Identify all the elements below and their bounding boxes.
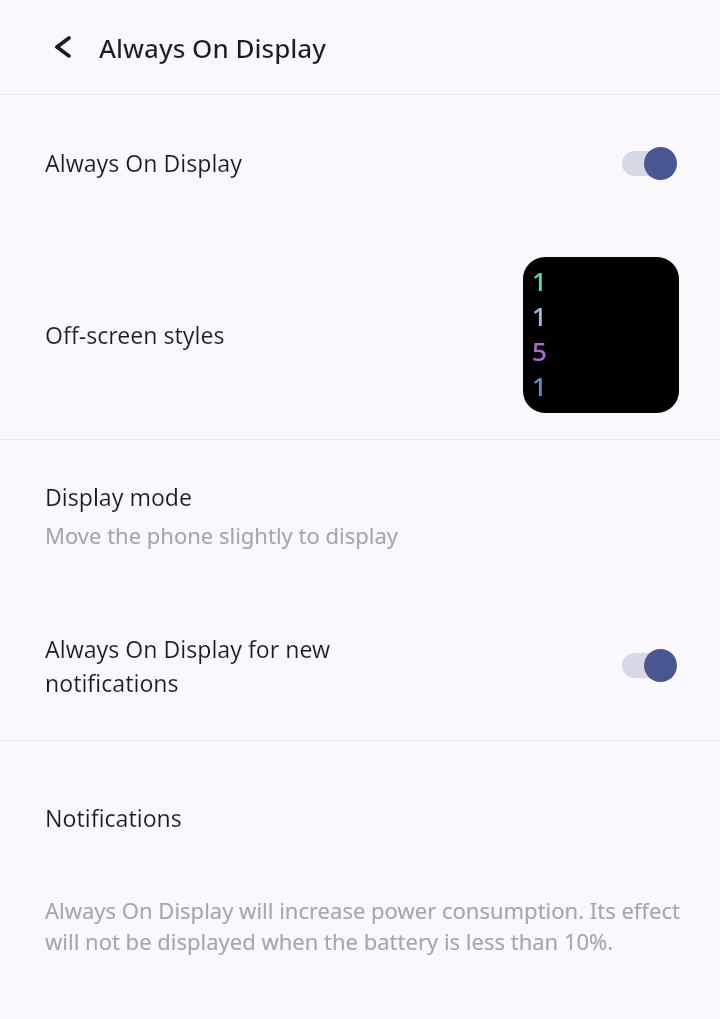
staticText: Always On Display will increase power co… [45,895,690,957]
button[interactable]: Off-screen style preview [523,257,679,413]
button[interactable]: Toggle [620,645,678,685]
staticText: 1 [532,298,547,333]
staticText: Always On Display [99,30,326,65]
staticText: 1 [532,368,547,403]
staticText: 5 [532,333,547,368]
staticText: Always On Display for new notifications [45,633,331,698]
staticText: Display mode [45,481,192,512]
staticText: Notifications [45,802,678,833]
button[interactable]: Display mode [0,440,720,590]
button[interactable]: Always On Display for new notifications [0,590,720,740]
button[interactable]: Off-screen styles [0,230,720,439]
staticText: Off-screen styles [45,319,523,350]
staticText: 1 [532,263,547,298]
button[interactable]: Notifications [0,741,720,893]
button[interactable]: Always On Display [0,95,720,230]
staticText: Always On Display [45,147,620,178]
button[interactable]: Back [40,24,86,70]
button[interactable]: Toggle [620,143,678,183]
staticText: Move the phone slightly to display [45,520,399,550]
